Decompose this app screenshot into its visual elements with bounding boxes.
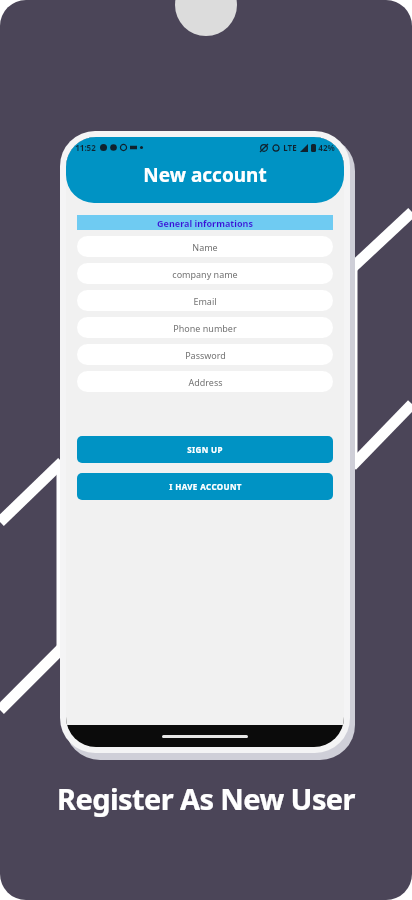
staticText: SIGN UP (187, 444, 223, 455)
staticText: Register As New User (0, 779, 412, 818)
staticText: Email (193, 295, 217, 307)
staticText: Password (185, 349, 226, 361)
staticText: I HAVE ACCOUNT (169, 481, 242, 492)
staticText: company name (172, 268, 238, 280)
button[interactable]: Name (77, 236, 333, 257)
button[interactable]: Phone number (77, 317, 333, 338)
button[interactable]: company name (77, 263, 333, 284)
staticText: Phone number (173, 322, 237, 334)
button[interactable]: General informations (77, 215, 333, 230)
button[interactable]: Email (77, 290, 333, 311)
staticText: Name (192, 241, 218, 253)
button[interactable]: I HAVE ACCOUNT (77, 473, 333, 500)
staticText: Address (188, 376, 223, 388)
staticText: General informations (157, 217, 253, 229)
staticText: New account (143, 162, 267, 188)
staticText: LTE (283, 142, 297, 153)
button[interactable]: Address (77, 371, 333, 392)
staticText: 11:52 (75, 142, 96, 153)
button[interactable]: Password (77, 344, 333, 365)
button[interactable]: SIGN UP (77, 436, 333, 463)
staticText: 42% (318, 142, 335, 153)
